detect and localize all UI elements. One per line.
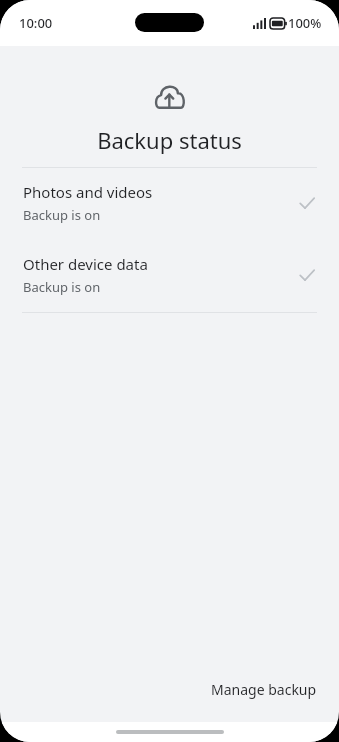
staticText: Backup is on xyxy=(23,206,101,224)
button[interactable]: Manage backup xyxy=(195,670,339,709)
other: Backup enabled xyxy=(297,265,317,285)
staticText: Other device data xyxy=(23,254,148,274)
button[interactable]: Photos and videos xyxy=(0,168,339,240)
other: Backup enabled xyxy=(297,193,317,213)
staticText: 10:00 xyxy=(19,14,53,32)
staticText: Photos and videos xyxy=(23,182,153,202)
staticText: Backup status xyxy=(0,125,339,155)
staticText: Manage backup xyxy=(211,680,317,699)
staticText: Backup is on xyxy=(23,278,101,296)
staticText: 100% xyxy=(288,14,322,32)
button[interactable]: Other device data xyxy=(0,240,339,312)
